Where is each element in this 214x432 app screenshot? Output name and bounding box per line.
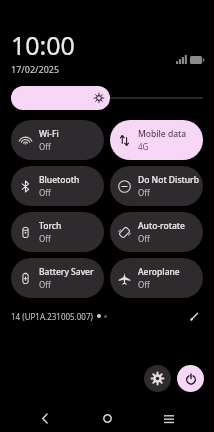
staticText: Aeroplane mode bbox=[138, 266, 199, 278]
button[interactable]: Do Not Disturb bbox=[110, 166, 203, 206]
staticText: Off bbox=[39, 233, 51, 244]
button[interactable]: Brightness bbox=[11, 86, 203, 110]
button[interactable]: Home bbox=[90, 405, 124, 432]
staticText: 17/02/2025 bbox=[11, 63, 60, 75]
staticText: Off bbox=[39, 187, 51, 198]
staticText: Off bbox=[138, 279, 150, 290]
staticText: Do Not Disturb bbox=[138, 174, 199, 186]
staticText: Auto-rotate bbox=[138, 220, 185, 232]
staticText: 4G bbox=[138, 141, 149, 152]
button[interactable]: Settings bbox=[144, 365, 171, 392]
staticText: 10:00 bbox=[11, 28, 75, 62]
button[interactable]: Aeroplane mode bbox=[110, 258, 203, 298]
button[interactable]: Back bbox=[28, 405, 62, 432]
staticText: Off bbox=[39, 141, 51, 152]
staticText: Off bbox=[138, 187, 150, 198]
button[interactable]: Torch bbox=[11, 212, 104, 252]
staticText: Torch bbox=[39, 220, 62, 232]
button[interactable]: Bluetooth bbox=[11, 166, 104, 206]
button[interactable]: Power bbox=[177, 365, 204, 392]
button[interactable]: Recent apps bbox=[152, 405, 186, 432]
staticText: 14 (UP1A.231005.007) bbox=[11, 311, 93, 322]
staticText: Mobile data bbox=[138, 128, 187, 140]
button[interactable]: Battery Saver bbox=[11, 258, 104, 298]
button[interactable]: Auto-rotate bbox=[110, 212, 203, 252]
button[interactable]: Edit tiles bbox=[185, 307, 203, 325]
staticText: Bluetooth bbox=[39, 174, 80, 186]
staticText: Off bbox=[39, 279, 51, 290]
button[interactable]: Wi-Fi bbox=[11, 120, 104, 160]
staticText: Wi-Fi bbox=[39, 128, 59, 140]
button[interactable]: Mobile data bbox=[110, 120, 203, 160]
staticText: Battery Saver bbox=[39, 266, 94, 278]
staticText: Off bbox=[138, 233, 150, 244]
